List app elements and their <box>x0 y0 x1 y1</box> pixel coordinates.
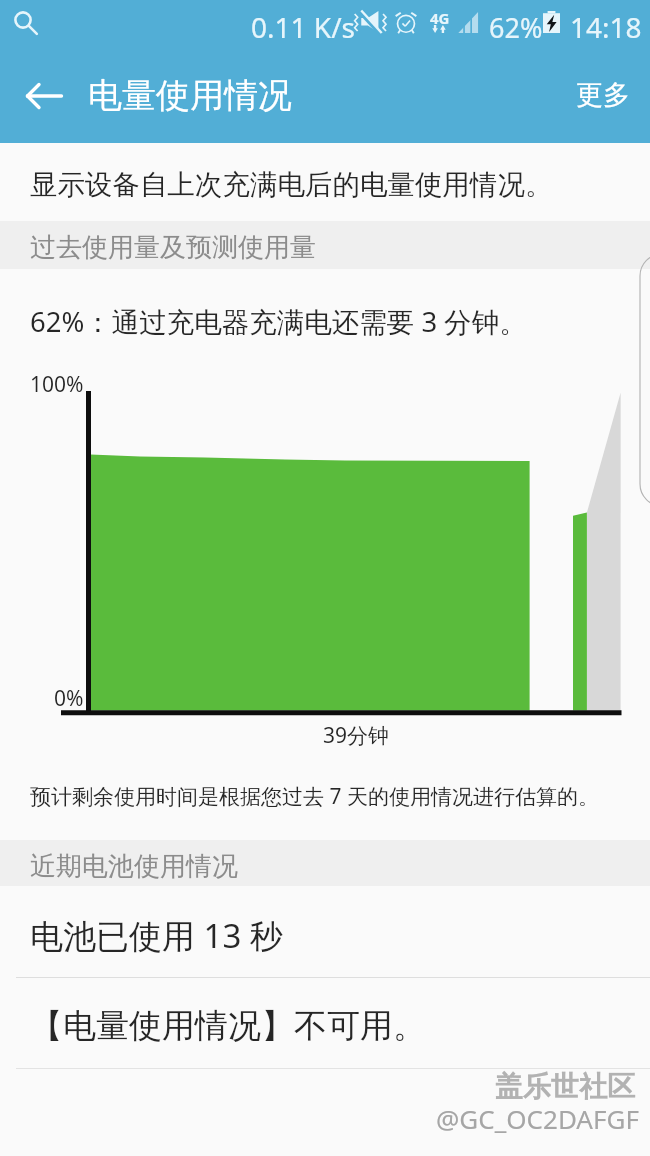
staticText: 电池已使用 13 秒 <box>30 913 283 958</box>
staticText: 过去使用量及预测使用量 <box>30 231 316 264</box>
staticText: 电量使用情况 <box>88 74 292 117</box>
button[interactable] <box>0 269 650 840</box>
staticText: 盖乐世社区 <box>495 1069 635 1104</box>
staticText: 62%：通过充电器充满电还需要 3 分钟。 <box>30 303 527 341</box>
staticText: 预计剩余使用时间是根据您过去 7 天的使用情况进行估算的。 <box>30 782 599 811</box>
button[interactable]: Search <box>4 4 44 44</box>
staticText: 62% <box>489 9 543 46</box>
staticText: 【电量使用情况】不可用。 <box>30 1005 426 1047</box>
button[interactable]: Back <box>22 74 68 120</box>
staticText: 更多 <box>576 78 630 112</box>
staticText: 4G <box>430 8 450 28</box>
staticText: 显示设备自上次充满电后的电量使用情况。 <box>30 168 553 203</box>
staticText: 0.11 K/s <box>251 8 355 46</box>
staticText: 近期电池使用情况 <box>30 850 238 883</box>
button[interactable]: 【电量使用情况】不可用。 <box>0 978 650 1068</box>
button[interactable]: 更多 <box>562 64 644 126</box>
button[interactable]: 电池已使用 13 秒 <box>0 886 650 977</box>
staticText: 100% <box>30 370 84 399</box>
staticText: 14:18 <box>570 8 642 46</box>
staticText: 39分钟 <box>323 721 390 750</box>
staticText: 0% <box>54 684 84 713</box>
staticText: @GC_OC2DAFGF <box>436 1101 639 1136</box>
